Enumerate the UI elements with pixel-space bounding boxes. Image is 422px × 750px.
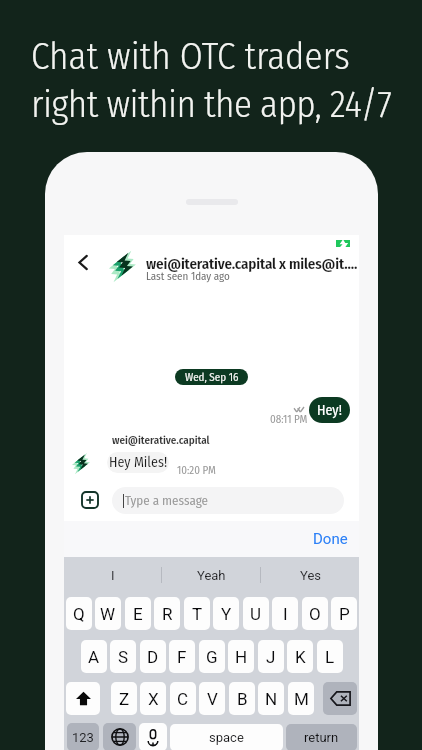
staticText: I	[111, 568, 115, 583]
staticText: L	[325, 647, 335, 667]
staticText: 10:20 PM	[177, 464, 216, 477]
button[interactable]: G	[199, 640, 225, 673]
staticText: E	[133, 604, 143, 624]
staticText: R	[162, 604, 173, 624]
button[interactable]: Hey Miles!	[107, 452, 169, 473]
button[interactable]: I	[272, 597, 298, 630]
button[interactable]: M	[288, 682, 314, 715]
staticText: Last seen 1day ago	[146, 270, 230, 283]
button[interactable]: Add attachment	[82, 492, 98, 508]
button[interactable]: Change keyboard	[103, 723, 136, 750]
staticText: Wed, Sep 16	[185, 371, 239, 384]
button[interactable]: I	[64, 557, 161, 593]
button[interactable]: L	[317, 640, 343, 673]
button[interactable]: Wed, Sep 16	[175, 369, 248, 385]
staticText: F	[177, 647, 187, 667]
button[interactable]: A	[81, 640, 107, 673]
staticText: H	[235, 647, 248, 667]
staticText: C	[177, 689, 189, 709]
staticText: wei@iterative.capital	[112, 434, 210, 447]
button[interactable]: X	[140, 682, 166, 715]
button[interactable]: Type a message	[112, 487, 344, 514]
staticText: M	[294, 689, 309, 709]
button[interactable]: P	[331, 597, 357, 630]
button[interactable]: Y	[213, 597, 239, 630]
staticText: 123	[72, 730, 94, 745]
staticText: Y	[221, 604, 232, 624]
staticText: K	[295, 647, 306, 667]
button[interactable]: U	[243, 597, 269, 630]
staticText: X	[148, 689, 159, 709]
staticText: Yes	[300, 568, 321, 583]
staticText: G	[206, 647, 218, 667]
button[interactable]: Hey!	[309, 397, 350, 423]
staticText: Done	[313, 530, 348, 548]
button[interactable]: T	[184, 597, 210, 630]
staticText: space	[209, 730, 244, 745]
button[interactable]: Yeah	[162, 557, 260, 593]
button[interactable]: Q	[66, 597, 92, 630]
button[interactable]: F	[169, 640, 195, 673]
button[interactable]: Z	[111, 682, 137, 715]
staticText: Z	[119, 689, 130, 709]
staticText: S	[118, 647, 129, 667]
button[interactable]: R	[154, 597, 180, 630]
button[interactable]: S	[110, 640, 136, 673]
button[interactable]: Back	[70, 249, 96, 275]
staticText: Q	[73, 604, 85, 624]
button[interactable]: 123	[67, 723, 99, 750]
button[interactable]: J	[258, 640, 284, 673]
staticText: Hey!	[317, 402, 342, 419]
button[interactable]: D	[140, 640, 166, 673]
staticText: return	[304, 730, 339, 745]
button[interactable]: N	[258, 682, 284, 715]
staticText: T	[192, 604, 203, 624]
staticText: P	[339, 604, 350, 624]
staticText: N	[265, 689, 278, 709]
button[interactable]: Yes	[261, 557, 359, 593]
button[interactable]: Shift	[66, 682, 100, 715]
button[interactable]: H	[228, 640, 254, 673]
button[interactable]: E	[125, 597, 151, 630]
button[interactable]: K	[287, 640, 313, 673]
button[interactable]: V	[199, 682, 225, 715]
button[interactable]: Done	[302, 523, 359, 555]
staticText: Hey Miles!	[109, 454, 168, 471]
button[interactable]: B	[229, 682, 255, 715]
staticText: O	[309, 604, 321, 624]
button[interactable]: O	[302, 597, 328, 630]
staticText: U	[250, 604, 262, 624]
staticText: right within the app, 24/7	[31, 82, 392, 126]
staticText: J	[266, 647, 276, 667]
staticText: I	[283, 604, 288, 624]
staticText: wei@iterative.capital x miles@it....	[146, 255, 358, 273]
staticText: V	[207, 689, 218, 709]
staticText: Type a message	[125, 493, 208, 509]
staticText: Chat with OTC traders	[31, 34, 350, 78]
button[interactable]: Dictate	[139, 723, 167, 750]
button[interactable]: return	[286, 724, 357, 750]
button[interactable]: W	[95, 597, 121, 630]
staticText: A	[88, 647, 100, 667]
staticText: Yeah	[197, 568, 226, 583]
staticText: W	[100, 604, 116, 624]
staticText: B	[237, 689, 248, 709]
button[interactable]: C	[170, 682, 196, 715]
button[interactable]: space	[170, 724, 283, 750]
staticText: D	[147, 647, 159, 667]
staticText: 08:11 PM	[270, 413, 308, 426]
button[interactable]: Backspace	[323, 682, 357, 715]
